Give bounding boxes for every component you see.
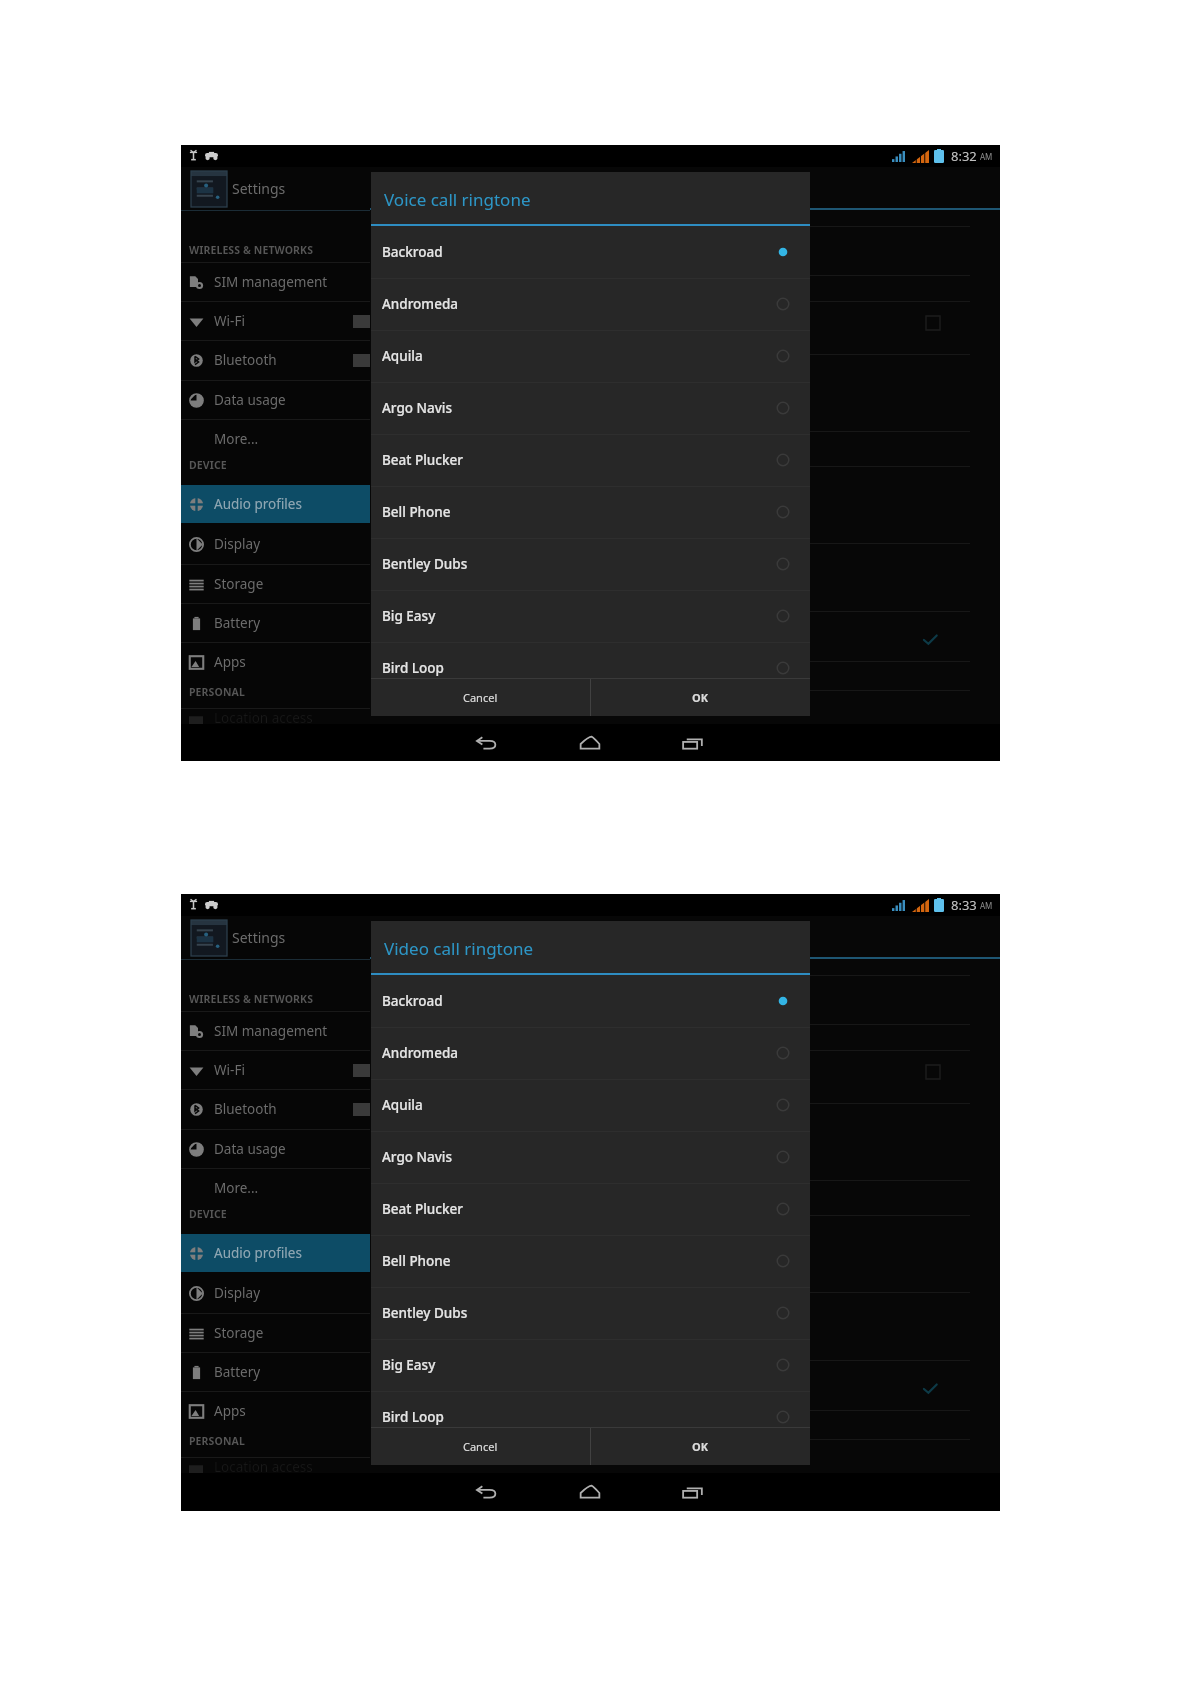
button[interactable]: Recents: [680, 731, 706, 757]
staticText: Andromeda: [382, 1044, 458, 1062]
button[interactable]: Data usage: [181, 1130, 370, 1168]
staticText: Wi-Fi: [214, 1061, 245, 1079]
button[interactable]: Home: [577, 731, 603, 757]
button[interactable]: Aquila: [371, 1079, 810, 1131]
button[interactable]: Bell Phone: [371, 486, 810, 538]
staticText: Backroad: [382, 992, 443, 1010]
button[interactable]: Data usage: [181, 381, 370, 419]
staticText: Location access: [214, 709, 313, 725]
button[interactable]: Big Easy: [371, 590, 810, 642]
button[interactable]: Back: [473, 1480, 499, 1506]
button[interactable]: Back: [473, 731, 499, 757]
staticText: Storage: [214, 1324, 264, 1342]
staticText: Aquila: [382, 1096, 423, 1114]
staticText: Backroad: [382, 243, 443, 261]
staticText: Bluetooth: [214, 351, 277, 369]
button[interactable]: Argo Navis: [371, 1131, 810, 1183]
button[interactable]: SIM management: [181, 263, 370, 301]
staticText: Voice call ringtone: [384, 188, 531, 211]
staticText: OK: [692, 690, 709, 705]
staticText: Wi-Fi: [214, 312, 245, 330]
button[interactable]: Settings: [181, 916, 370, 959]
staticText: Argo Navis: [382, 399, 453, 417]
button[interactable]: Display: [181, 1274, 370, 1312]
staticText: Bell Phone: [382, 503, 451, 521]
button[interactable]: Argo Navis: [371, 382, 810, 434]
staticText: Beat Plucker: [382, 1200, 463, 1218]
button[interactable]: Storage: [181, 565, 370, 603]
button[interactable]: Apps: [181, 1392, 370, 1430]
button[interactable]: Cancel: [371, 679, 590, 716]
staticText: Storage: [214, 575, 264, 593]
button[interactable]: Wi-Fi: [181, 302, 370, 340]
staticText: Bird Loop: [382, 659, 444, 677]
staticText: Andromeda: [382, 295, 458, 313]
button[interactable]: Backroad: [371, 226, 810, 278]
button[interactable]: Apps: [181, 643, 370, 681]
button[interactable]: Backroad: [371, 975, 810, 1027]
button[interactable]: OK: [591, 679, 810, 716]
staticText: Audio profiles: [214, 1244, 302, 1262]
staticText: More...: [214, 430, 259, 448]
button[interactable]: Cancel: [371, 1428, 590, 1465]
button[interactable]: Location access: [181, 1458, 370, 1474]
staticText: Location access: [214, 1458, 313, 1474]
button[interactable]: Bird Loop: [371, 642, 810, 678]
staticText: AM: [980, 900, 993, 911]
button[interactable]: Battery: [181, 1353, 370, 1391]
staticText: Big Easy: [382, 1356, 436, 1374]
staticText: Data usage: [214, 1140, 286, 1158]
staticText: Apps: [214, 653, 246, 671]
staticText: Big Easy: [382, 607, 436, 625]
button[interactable]: Bluetooth: [181, 341, 370, 379]
button[interactable]: Recents: [680, 1480, 706, 1506]
button[interactable]: SIM management: [181, 1012, 370, 1050]
button[interactable]: Location access: [181, 709, 370, 725]
button[interactable]: Beat Plucker: [371, 434, 810, 486]
staticText: 8:32: [951, 147, 977, 165]
button[interactable]: Bird Loop: [371, 1391, 810, 1427]
button[interactable]: Storage: [181, 1314, 370, 1352]
button[interactable]: Andromeda: [371, 1027, 810, 1079]
button[interactable]: Beat Plucker: [371, 1183, 810, 1235]
staticText: Settings: [232, 179, 286, 198]
button[interactable]: Aquila: [371, 330, 810, 382]
staticText: Bird Loop: [382, 1408, 444, 1426]
staticText: 8:33: [951, 896, 977, 914]
staticText: DEVICE: [189, 1207, 227, 1221]
button[interactable]: Bell Phone: [371, 1235, 810, 1287]
button[interactable]: Andromeda: [371, 278, 810, 330]
staticText: Cancel: [463, 690, 498, 705]
staticText: Display: [214, 535, 261, 553]
button[interactable]: Bentley Dubs: [371, 1287, 810, 1339]
staticText: AM: [980, 151, 993, 162]
button[interactable]: Battery: [181, 604, 370, 642]
staticText: PERSONAL: [189, 685, 245, 699]
staticText: Bell Phone: [382, 1252, 451, 1270]
button[interactable]: Display: [181, 525, 370, 563]
button[interactable]: OK: [591, 1428, 810, 1465]
button[interactable]: Big Easy: [371, 1339, 810, 1391]
button[interactable]: Audio profiles: [181, 485, 370, 523]
button[interactable]: Home: [577, 1480, 603, 1506]
staticText: Argo Navis: [382, 1148, 453, 1166]
button[interactable]: Bentley Dubs: [371, 538, 810, 590]
button[interactable]: More...: [181, 1169, 370, 1207]
button[interactable]: Settings: [181, 167, 370, 210]
staticText: Audio profiles: [214, 495, 302, 513]
staticText: WIRELESS & NETWORKS: [189, 243, 314, 257]
staticText: Display: [214, 1284, 261, 1302]
staticText: OK: [692, 1439, 709, 1454]
button[interactable]: Bluetooth: [181, 1090, 370, 1128]
button[interactable]: Audio profiles: [181, 1234, 370, 1272]
staticText: DEVICE: [189, 458, 227, 472]
staticText: Battery: [214, 1363, 261, 1381]
button[interactable]: Wi-Fi: [181, 1051, 370, 1089]
staticText: SIM management: [214, 1022, 328, 1040]
staticText: Settings: [232, 928, 286, 947]
button[interactable]: More...: [181, 420, 370, 458]
